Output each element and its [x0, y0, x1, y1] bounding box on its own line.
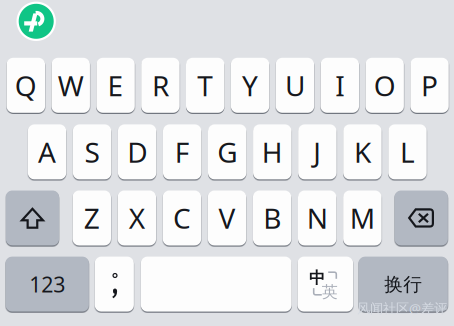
button[interactable]: Y — [231, 58, 269, 113]
button[interactable]: R — [141, 58, 180, 113]
button[interactable]: E — [96, 58, 135, 113]
staticText: J — [313, 133, 321, 170]
button[interactable]: I — [321, 58, 359, 113]
staticText: E — [107, 67, 123, 104]
staticText: 中 — [309, 268, 325, 288]
button[interactable]: C — [163, 190, 201, 245]
button[interactable]: S — [73, 124, 111, 179]
staticText: H — [262, 133, 283, 170]
button[interactable]: T — [186, 58, 224, 113]
staticText: 换行 — [384, 273, 422, 296]
staticText: 123 — [29, 270, 65, 298]
button[interactable]: O — [365, 58, 404, 113]
button[interactable]: 换行 — [359, 257, 448, 312]
staticText: I — [335, 67, 344, 104]
button[interactable]: G — [208, 124, 246, 179]
staticText: U — [285, 67, 305, 104]
staticText: K — [354, 133, 371, 170]
staticText: 风闻社区@差评 — [357, 299, 447, 317]
button[interactable]: Punctuation — [95, 257, 134, 312]
button[interactable]: P — [410, 58, 449, 113]
button[interactable]: L — [388, 124, 427, 179]
button[interactable]: M — [343, 190, 382, 245]
button[interactable]: W — [51, 58, 90, 113]
staticText: F — [175, 133, 190, 170]
button[interactable]: J — [298, 124, 337, 179]
staticText: R — [152, 67, 169, 104]
staticText: N — [307, 199, 328, 237]
staticText: V — [219, 199, 236, 237]
button[interactable]: U — [276, 58, 314, 113]
button[interactable]: 123 — [6, 257, 89, 312]
staticText: O — [374, 67, 396, 104]
button[interactable]: D — [118, 124, 156, 179]
staticText: A — [38, 133, 56, 170]
button[interactable]: Switch between Chinese and English — [297, 257, 353, 312]
staticText: L — [400, 133, 415, 170]
staticText: T — [197, 67, 213, 104]
staticText: Y — [242, 67, 258, 104]
staticText: W — [58, 67, 84, 104]
button[interactable]: Shift — [6, 190, 59, 245]
button[interactable]: Delete — [395, 190, 448, 245]
staticText: 英 — [322, 282, 338, 302]
staticText: B — [263, 199, 281, 237]
button[interactable]: Z — [72, 190, 111, 245]
staticText: S — [85, 133, 100, 170]
button[interactable]: N — [298, 190, 336, 245]
staticText: Q — [15, 67, 37, 104]
button[interactable]: B — [253, 190, 291, 245]
button[interactable]: V — [208, 190, 246, 245]
button[interactable]: X — [118, 190, 156, 245]
staticText: D — [127, 133, 147, 170]
button[interactable]: F — [163, 124, 201, 179]
staticText: P — [421, 67, 438, 104]
staticText: Z — [84, 199, 100, 237]
button[interactable]: K — [343, 124, 382, 179]
button[interactable]: Q — [7, 58, 45, 113]
staticText: X — [129, 199, 145, 237]
button[interactable]: A — [28, 124, 66, 179]
staticText: G — [217, 133, 237, 170]
button[interactable]: Space — [141, 257, 292, 312]
staticText: M — [350, 199, 375, 237]
staticText: C — [173, 199, 191, 237]
button[interactable]: H — [253, 124, 292, 179]
